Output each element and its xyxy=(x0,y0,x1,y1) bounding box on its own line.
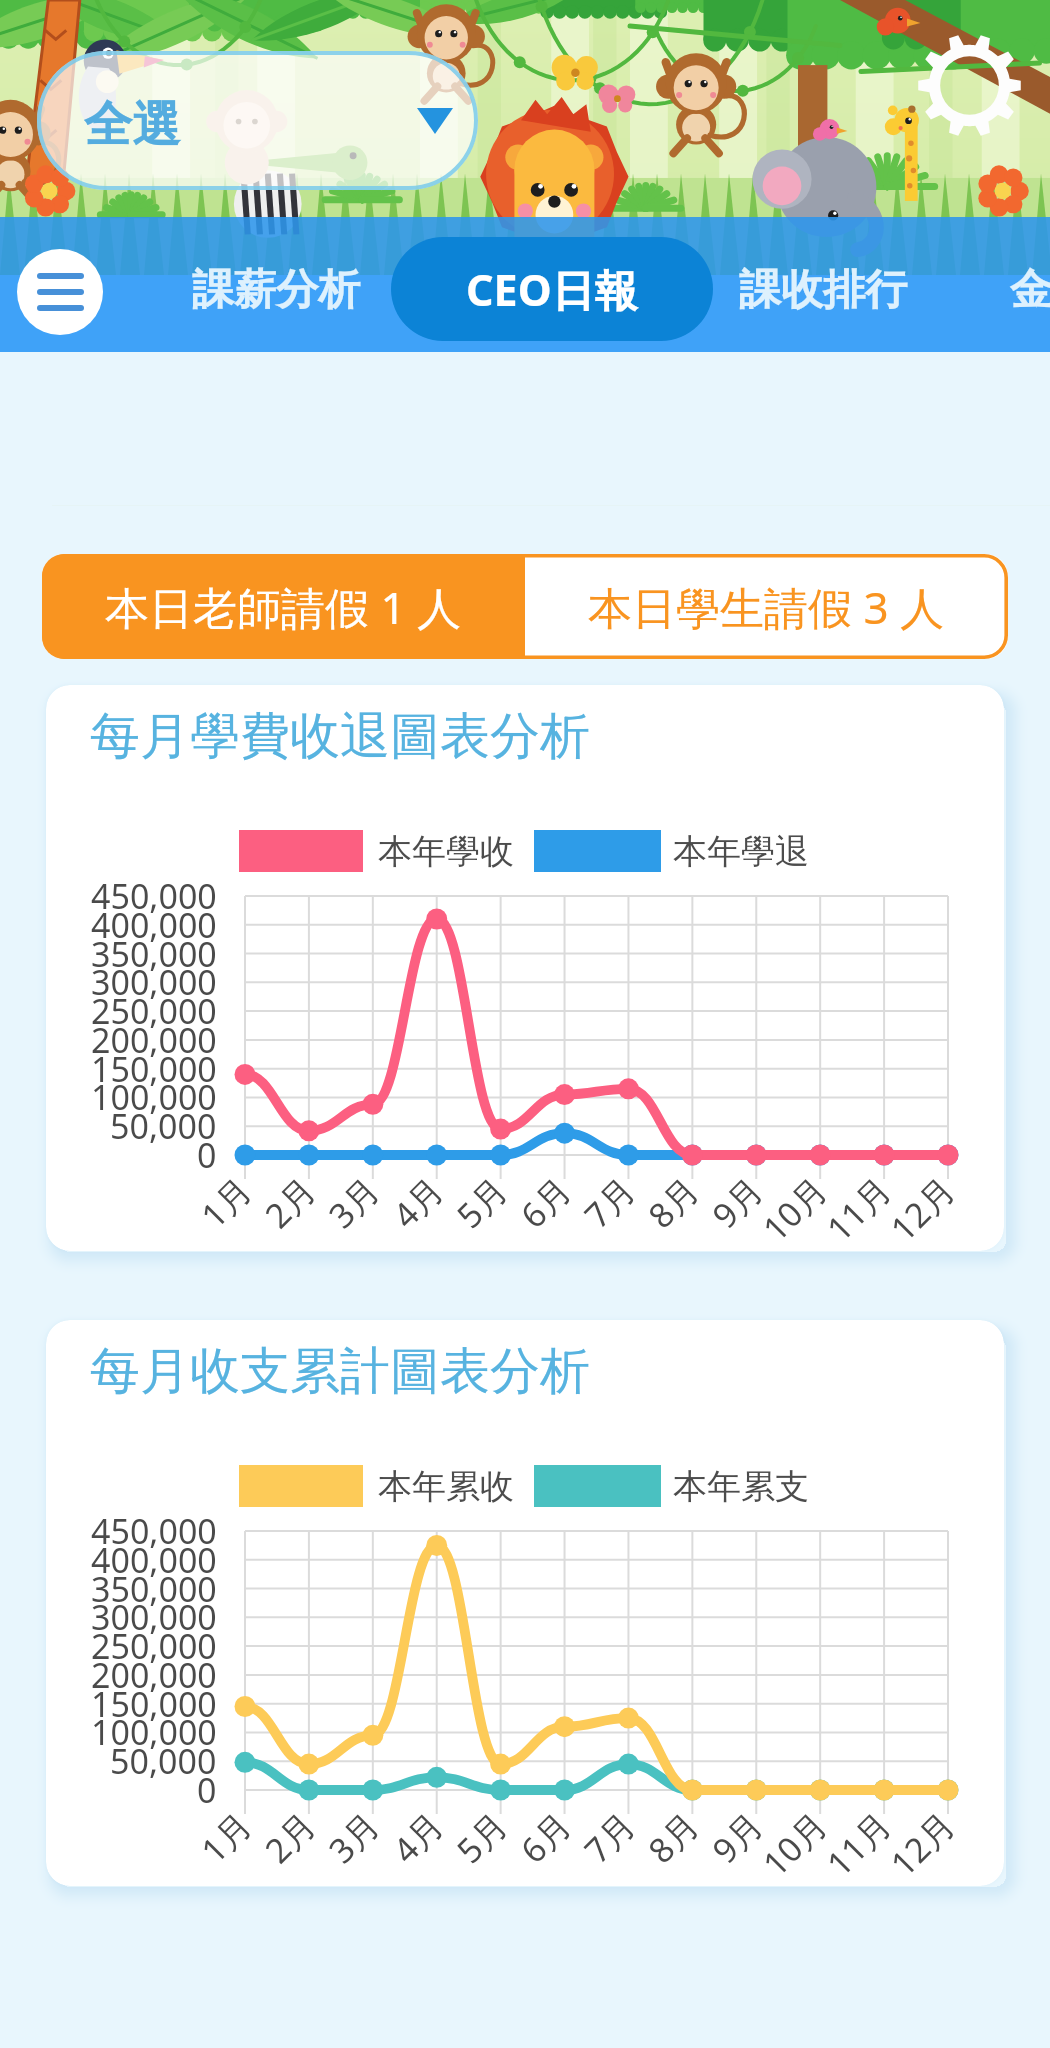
staticText: 全選 xyxy=(84,95,180,155)
button[interactable]: 本日學生請假 3 人 xyxy=(525,554,1008,659)
staticText: 本年學退 xyxy=(673,830,809,873)
staticText: 本日學生請假 3 人 xyxy=(588,577,945,637)
staticText: 金 xyxy=(1010,264,1050,317)
button[interactable]: 本日老師請假 1 人 xyxy=(42,554,525,659)
staticText: 課薪分析 xyxy=(192,264,360,317)
staticText: 每月學費收退圖表分析 xyxy=(90,705,590,768)
staticText: 本日老師請假 1 人 xyxy=(105,577,462,637)
button[interactable]: Settings xyxy=(918,34,1021,137)
staticText: 本年累支 xyxy=(673,1465,809,1508)
staticText: 本年學收 xyxy=(378,830,514,873)
staticText: 課收排行 xyxy=(739,264,907,317)
staticText: 本年累收 xyxy=(378,1465,514,1508)
button[interactable]: 課薪分析 xyxy=(172,237,380,341)
button[interactable]: 課收排行 xyxy=(718,237,928,341)
button[interactable]: CEO日報 xyxy=(391,237,713,341)
button[interactable]: 全選 xyxy=(37,51,478,190)
staticText: CEO日報 xyxy=(466,260,638,319)
button[interactable]: 金 xyxy=(977,237,1050,341)
staticText: 每月收支累計圖表分析 xyxy=(90,1340,590,1403)
button[interactable]: Menu xyxy=(17,249,103,335)
